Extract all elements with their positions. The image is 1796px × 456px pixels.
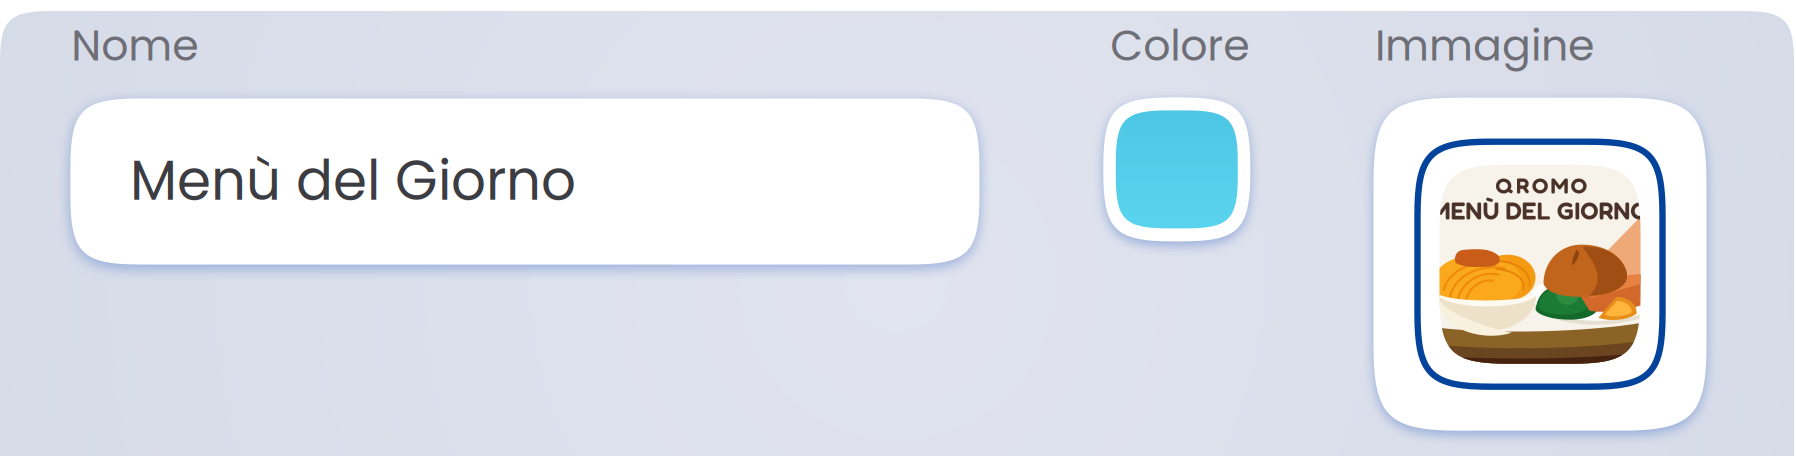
staticText: Immagine xyxy=(1375,16,1594,75)
staticText: Colore xyxy=(1110,16,1249,75)
staticText: MENÙ DEL GIORNO xyxy=(1430,196,1648,225)
staticText: R xyxy=(1516,172,1530,199)
staticText: Nome xyxy=(71,16,198,75)
staticText: M xyxy=(1550,172,1568,199)
staticText: O xyxy=(1571,172,1587,199)
button[interactable]: Menù del Giorno xyxy=(70,98,979,264)
button[interactable]: Immagine xyxy=(1373,98,1706,431)
staticText: O xyxy=(1532,172,1548,199)
button[interactable]: Colore xyxy=(1103,97,1250,241)
staticText: Q xyxy=(1495,172,1513,199)
staticText: Menù del Giorno xyxy=(130,142,576,219)
